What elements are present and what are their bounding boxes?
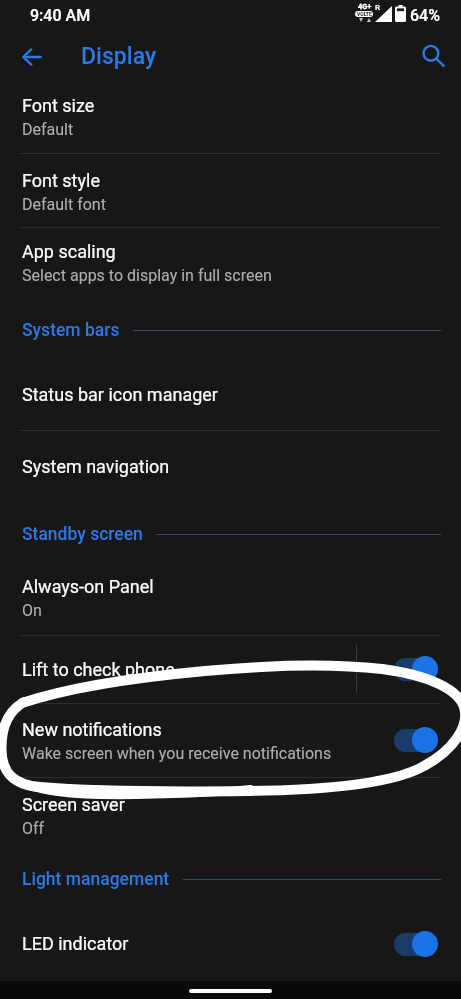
button[interactable]: Screen saver <box>0 777 461 853</box>
staticText: Font style <box>22 170 100 191</box>
button[interactable]: Search <box>411 34 456 79</box>
button[interactable]: Toggle Lift to check phone <box>393 656 438 682</box>
staticText: On <box>22 601 42 620</box>
staticText: Select apps to display in full screen <box>22 266 272 285</box>
staticText: Lift to check phone <box>22 659 175 680</box>
button[interactable]: App scaling <box>0 227 461 296</box>
staticText: LED indicator <box>22 933 129 954</box>
button[interactable]: Font style <box>0 153 461 227</box>
staticText: 9:40 AM <box>30 6 91 25</box>
button[interactable]: System navigation <box>0 430 461 501</box>
button[interactable]: New notifications <box>0 703 461 777</box>
button[interactable]: Status bar icon manager <box>0 358 461 430</box>
button[interactable]: Toggle LED indicator <box>393 931 438 957</box>
staticText: New notifications <box>22 719 162 740</box>
staticText: Display <box>81 43 157 70</box>
staticText: 64% <box>410 6 440 25</box>
staticText: Standby screen <box>22 524 143 544</box>
button[interactable]: Toggle New notifications <box>393 727 438 753</box>
staticText: App scaling <box>22 241 116 262</box>
staticText: Font size <box>22 95 95 116</box>
button[interactable]: Lift to check phone <box>0 635 461 703</box>
staticText: System navigation <box>22 456 170 477</box>
staticText: Default <box>22 120 74 139</box>
staticText: Light management <box>22 869 170 889</box>
staticText: Default font <box>22 195 106 214</box>
button[interactable]: LED indicator <box>0 904 461 984</box>
button[interactable]: Always-on Panel <box>0 564 461 635</box>
button[interactable]: Font size <box>0 79 461 153</box>
staticText: Status bar icon manager <box>22 384 218 405</box>
staticText: System bars <box>22 320 120 340</box>
button[interactable]: Back <box>9 34 54 79</box>
staticText: Off <box>22 819 45 838</box>
staticText: VOLTE <box>357 11 372 17</box>
staticText: R <box>375 3 380 12</box>
staticText: Screen saver <box>22 794 125 815</box>
staticText: Wake screen when you receive notificatio… <box>22 744 332 763</box>
staticText: 4G+ <box>358 2 372 11</box>
staticText: Always-on Panel <box>22 576 154 597</box>
